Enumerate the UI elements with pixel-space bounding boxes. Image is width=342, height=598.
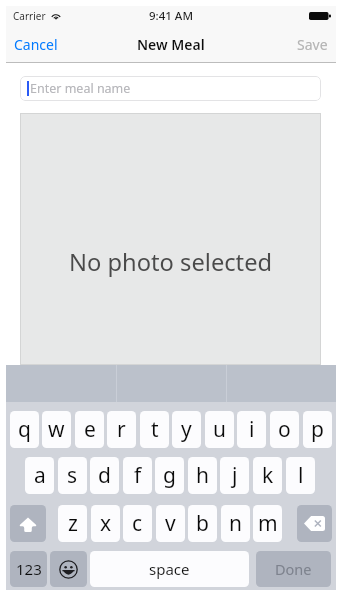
button[interactable]: d [90, 457, 119, 494]
staticText: m [258, 509, 278, 538]
button[interactable]: i [237, 411, 266, 448]
button[interactable]: k [253, 457, 282, 494]
button[interactable]: space [90, 551, 249, 587]
staticText: v [165, 509, 176, 538]
staticText: space [149, 559, 190, 579]
staticText: e [84, 415, 96, 444]
button[interactable]: 123 [10, 551, 47, 587]
button[interactable]: e [75, 411, 104, 448]
button[interactable]: Save [287, 26, 336, 62]
button[interactable]: q [10, 411, 39, 448]
staticText: No photo selected [69, 246, 273, 278]
button[interactable]: y [172, 411, 201, 448]
staticText: Enter meal name [30, 80, 131, 97]
button[interactable]: t [140, 411, 169, 448]
button[interactable]: Enter meal name [20, 76, 321, 101]
staticText: k [262, 461, 274, 490]
staticText: y [181, 415, 192, 444]
button[interactable]: r [107, 411, 136, 448]
button[interactable]: n [221, 505, 250, 542]
staticText: d [98, 461, 111, 490]
button[interactable]: Backspace [297, 505, 332, 542]
staticText: z [68, 509, 78, 538]
button[interactable]: o [270, 411, 299, 448]
staticText: f [134, 461, 142, 490]
staticText: x [100, 509, 112, 538]
staticText: n [229, 509, 242, 538]
staticText: a [34, 461, 46, 490]
button[interactable]: b [188, 505, 217, 542]
button[interactable]: g [155, 457, 184, 494]
button[interactable]: v [156, 505, 185, 542]
staticText: Done [275, 559, 312, 579]
button[interactable]: s [58, 457, 87, 494]
button[interactable]: w [42, 411, 71, 448]
button[interactable]: Shift [10, 505, 46, 542]
button[interactable]: Cancel [6, 26, 68, 62]
button[interactable]: No photo selected [20, 113, 321, 365]
button[interactable]: a [25, 457, 54, 494]
staticText: c [132, 509, 143, 538]
staticText: l [298, 461, 304, 490]
staticText: h [196, 461, 209, 490]
staticText: New Meal [137, 35, 205, 54]
button[interactable]: p [303, 411, 332, 448]
staticText: q [18, 415, 31, 444]
button[interactable]: Emoji keyboard [50, 551, 87, 587]
button[interactable]: h [188, 457, 217, 494]
button[interactable]: z [58, 505, 87, 542]
staticText: s [67, 461, 78, 490]
staticText: w [48, 415, 65, 444]
staticText: 123 [16, 559, 42, 579]
staticText: 9:41 AM [149, 8, 193, 24]
staticText: j [232, 461, 238, 490]
staticText: o [278, 415, 291, 444]
staticText: Cancel [14, 35, 58, 54]
staticText: Save [297, 35, 328, 54]
staticText: g [163, 461, 176, 490]
button[interactable]: Done [256, 551, 331, 587]
staticText: p [311, 415, 324, 444]
staticText: u [213, 415, 226, 444]
staticText: i [249, 415, 255, 444]
button[interactable]: u [205, 411, 234, 448]
staticText: Carrier [13, 9, 46, 23]
button[interactable]: j [220, 457, 249, 494]
button[interactable]: x [91, 505, 120, 542]
button[interactable]: c [123, 505, 152, 542]
staticText: t [151, 415, 159, 444]
staticText: b [196, 509, 209, 538]
button[interactable]: f [123, 457, 152, 494]
button[interactable]: l [286, 457, 315, 494]
button[interactable]: m [253, 505, 282, 542]
staticText: r [117, 415, 126, 444]
